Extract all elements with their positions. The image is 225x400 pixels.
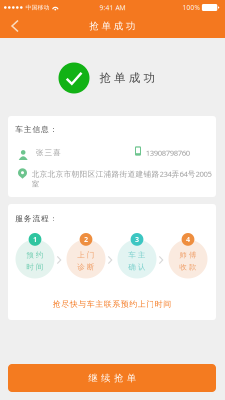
staticText: 认: [138, 262, 146, 272]
staticText: 程: [41, 214, 49, 223]
staticText: 4: [186, 234, 190, 244]
staticText: 喜: [53, 148, 61, 157]
staticText: ：: [50, 125, 58, 134]
staticText: 上: [138, 299, 146, 309]
staticText: 功: [143, 71, 155, 85]
staticText: 单: [127, 372, 136, 384]
staticText: 约: [36, 250, 44, 260]
staticText: 收: [179, 262, 187, 272]
staticText: 联: [104, 299, 112, 309]
staticText: 上: [77, 250, 85, 260]
staticText: 师: [179, 250, 187, 260]
button[interactable]: 返回: [1, 14, 29, 38]
staticText: 尽: [61, 299, 69, 309]
staticText: 息: [41, 125, 49, 134]
staticText: ：: [50, 214, 58, 223]
staticText: 成: [113, 20, 123, 32]
staticText: 间: [36, 262, 44, 272]
staticText: 预: [26, 250, 34, 260]
staticText: 时: [155, 299, 163, 309]
staticText: 单: [101, 20, 111, 32]
staticText: 信: [32, 125, 40, 134]
button[interactable]: 继: [8, 364, 216, 392]
staticText: 续: [101, 372, 110, 384]
staticText: 车: [15, 125, 23, 134]
staticText: 务: [24, 214, 32, 223]
staticText: 诊: [77, 262, 85, 272]
staticText: 抢: [99, 71, 111, 85]
staticText: 100%: [182, 3, 199, 12]
staticText: 确: [128, 262, 136, 272]
staticText: 快: [70, 299, 78, 309]
staticText: 预: [121, 299, 129, 309]
staticText: 款: [189, 262, 197, 272]
staticText: 主: [138, 250, 146, 260]
staticText: 继: [88, 372, 97, 384]
staticText: 2: [84, 234, 88, 244]
staticText: 主: [24, 125, 32, 134]
staticText: 张: [36, 148, 44, 157]
staticText: 门: [87, 250, 95, 260]
staticText: 三: [44, 148, 52, 157]
staticText: 北京北京市朝阳区江浦路街道建铺路234弄64号2005室: [31, 169, 211, 189]
staticText: 与: [78, 299, 86, 309]
staticText: 1: [33, 234, 37, 244]
staticText: 抢: [89, 20, 99, 32]
staticText: 抢: [53, 299, 61, 309]
staticText: 单: [114, 71, 126, 85]
staticText: 门: [146, 299, 154, 309]
staticText: 车: [87, 299, 95, 309]
staticText: 功: [126, 20, 136, 32]
staticText: 时: [26, 262, 34, 272]
staticText: 傅: [189, 250, 197, 260]
staticText: 间: [163, 299, 171, 309]
staticText: 断: [87, 262, 95, 272]
staticText: 抢: [114, 372, 123, 384]
staticText: 成: [129, 71, 141, 85]
staticText: 9:41 AM: [99, 3, 125, 12]
staticText: 约: [129, 299, 137, 309]
staticText: 中国移动: [25, 4, 49, 11]
staticText: 车: [128, 250, 136, 260]
staticText: 系: [112, 299, 120, 309]
staticText: 服: [15, 214, 23, 223]
staticText: 3: [135, 234, 139, 244]
staticText: 13908798760: [146, 148, 190, 158]
staticText: 流: [32, 214, 40, 223]
staticText: 主: [95, 299, 103, 309]
